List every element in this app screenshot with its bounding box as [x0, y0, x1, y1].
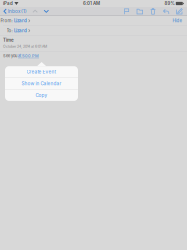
- staticText: at 5:00 PM: [18, 53, 39, 58]
- staticText: Inbox (1): [8, 8, 27, 14]
- button[interactable]: Lizard: [12, 27, 31, 35]
- staticText: Time: [3, 37, 14, 43]
- button[interactable]: Next message: [41, 7, 52, 15]
- staticText: 89%: [164, 1, 174, 6]
- button[interactable]: Show in Calendar: [5, 78, 78, 89]
- staticText: October 24, 2014 at 6:01 AM: [3, 44, 47, 48]
- staticText: 6:01 AM: [83, 1, 100, 6]
- staticText: Hide: [172, 18, 182, 23]
- staticText: Show in Calendar: [21, 81, 61, 86]
- button[interactable]: Copy: [5, 90, 78, 101]
- staticText: Create Event: [26, 69, 56, 75]
- button[interactable]: Inbox (1): [1, 7, 29, 15]
- button[interactable]: Reply: [159, 7, 173, 15]
- staticText: See you: [3, 53, 18, 58]
- staticText: Copy: [35, 92, 47, 98]
- button[interactable]: Flag: [120, 7, 133, 15]
- button[interactable]: Previous message: [29, 7, 41, 15]
- staticText: Lizard: [14, 28, 27, 33]
- button[interactable]: Compose: [173, 7, 186, 15]
- button[interactable]: Delete: [146, 7, 159, 15]
- staticText: Lizard: [14, 18, 27, 23]
- button[interactable]: Hide: [170, 17, 184, 25]
- staticText: iPad: [3, 1, 13, 6]
- button[interactable]: at 5:00 PM: [18, 53, 39, 58]
- button[interactable]: Create Event: [5, 66, 78, 77]
- button[interactable]: Move to folder: [133, 7, 146, 15]
- staticText: From:: [0, 18, 12, 23]
- button[interactable]: Lizard: [12, 17, 31, 25]
- staticText: To:: [6, 28, 12, 33]
